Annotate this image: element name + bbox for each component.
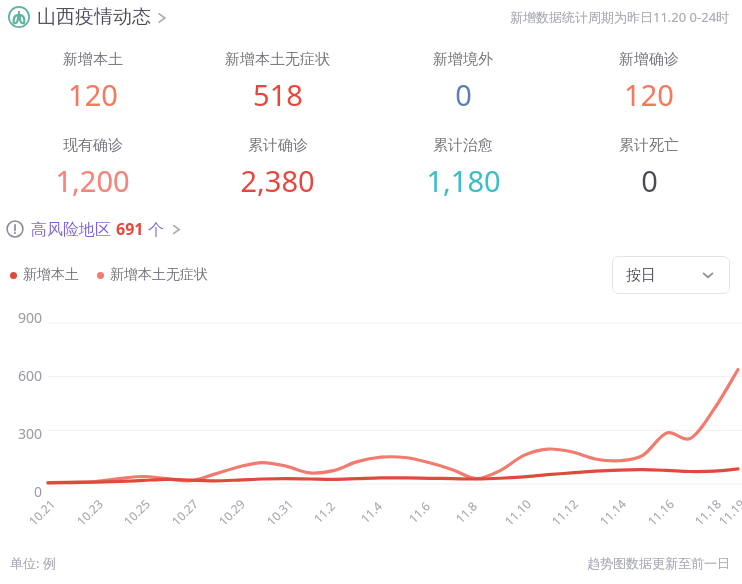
staticText: 2,380 [240,161,315,200]
staticText: 山西疫情动态 [37,5,151,29]
staticText: 累计死亡 [619,136,679,155]
staticText: 趋势图数据更新至前一日 [587,555,730,571]
button[interactable]: 现有确诊 [0,136,185,200]
button[interactable]: 高风险地区 [6,218,184,240]
staticText: 1,180 [426,161,501,200]
staticText: 10.29 [215,495,248,529]
button[interactable]: 累计确诊 [185,136,370,200]
staticText: 10.27 [168,495,201,529]
staticText: 600 [0,366,42,382]
staticText: 10.25 [120,495,153,529]
staticText: 300 [0,424,42,440]
staticText: 单位: 例 [10,554,56,572]
staticText: 0 [455,75,472,114]
staticText: 0 [0,482,42,498]
button[interactable]: 累计死亡 [556,136,742,200]
staticText: 个 [144,218,165,240]
staticText: 11.14 [596,495,629,529]
staticText: 新增本土 [63,50,123,69]
staticText: 11.10 [501,495,534,529]
staticText: 120 [68,75,118,114]
staticText: 1,200 [55,161,130,200]
staticText: 新增确诊 [619,50,679,69]
staticText: 900 [0,308,42,324]
staticText: 11.12 [548,495,581,529]
button[interactable]: 山西疫情动态 [8,5,170,29]
button[interactable]: 新增本土无症状 [185,50,370,114]
staticText: 518 [253,75,303,114]
staticText: 11.16 [644,495,677,529]
staticText: 10.23 [73,495,106,529]
staticText: 11.2 [310,498,338,526]
staticText: 现有确诊 [63,136,123,155]
button[interactable]: 新增境外 [370,50,556,114]
staticText: 691 [116,218,144,240]
staticText: 11.8 [452,498,480,526]
button[interactable]: 新增本土 [0,50,185,114]
staticText: 新增本土无症状 [225,50,330,69]
staticText: 高风险地区 [31,218,116,240]
button[interactable]: 新增确诊 [556,50,742,114]
button[interactable]: 累计治愈 [370,136,556,200]
staticText: 按日 [626,266,656,285]
staticText: 120 [624,75,674,114]
staticText: 累计确诊 [248,136,308,155]
staticText: 新增本土无症状 [110,266,208,284]
staticText: 11.19 [715,495,742,529]
staticText: 0 [641,161,658,200]
button[interactable]: 按日 [612,256,730,294]
staticText: 10.31 [263,495,296,529]
staticText: 10.21 [25,495,58,529]
staticText: 11.4 [357,498,385,526]
staticText: 新增数据统计周期为昨日11.20 0-24时 [510,8,730,26]
staticText: 11.6 [405,498,433,526]
staticText: 新增本土 [23,266,79,284]
staticText: 11.18 [691,495,724,529]
staticText: 累计治愈 [433,136,493,155]
staticText: 新增境外 [433,50,493,69]
